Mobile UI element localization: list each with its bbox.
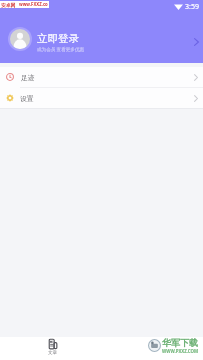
staticText: 安卓网 — [1, 2, 16, 8]
staticText: 文章 — [48, 350, 58, 356]
button[interactable]: 足迹 — [0, 67, 203, 87]
staticText: WWW.PXXZ.COM — [162, 348, 199, 354]
button[interactable]: 文章 — [41, 337, 65, 356]
staticText: 成为会员 查看更多优惠 — [37, 46, 85, 52]
staticText: 3:59 — [185, 2, 199, 12]
button[interactable]: 立即登录 — [0, 14, 203, 63]
staticText: 设置 — [20, 94, 34, 103]
button[interactable]: 设置 — [0, 88, 203, 108]
staticText: 华军下载 — [162, 337, 198, 348]
staticText: 足迹 — [21, 73, 35, 82]
staticText: www.FXXZ.com — [19, 1, 49, 8]
button[interactable]: Login — [191, 37, 201, 47]
staticText: 立即登录 — [37, 32, 79, 45]
